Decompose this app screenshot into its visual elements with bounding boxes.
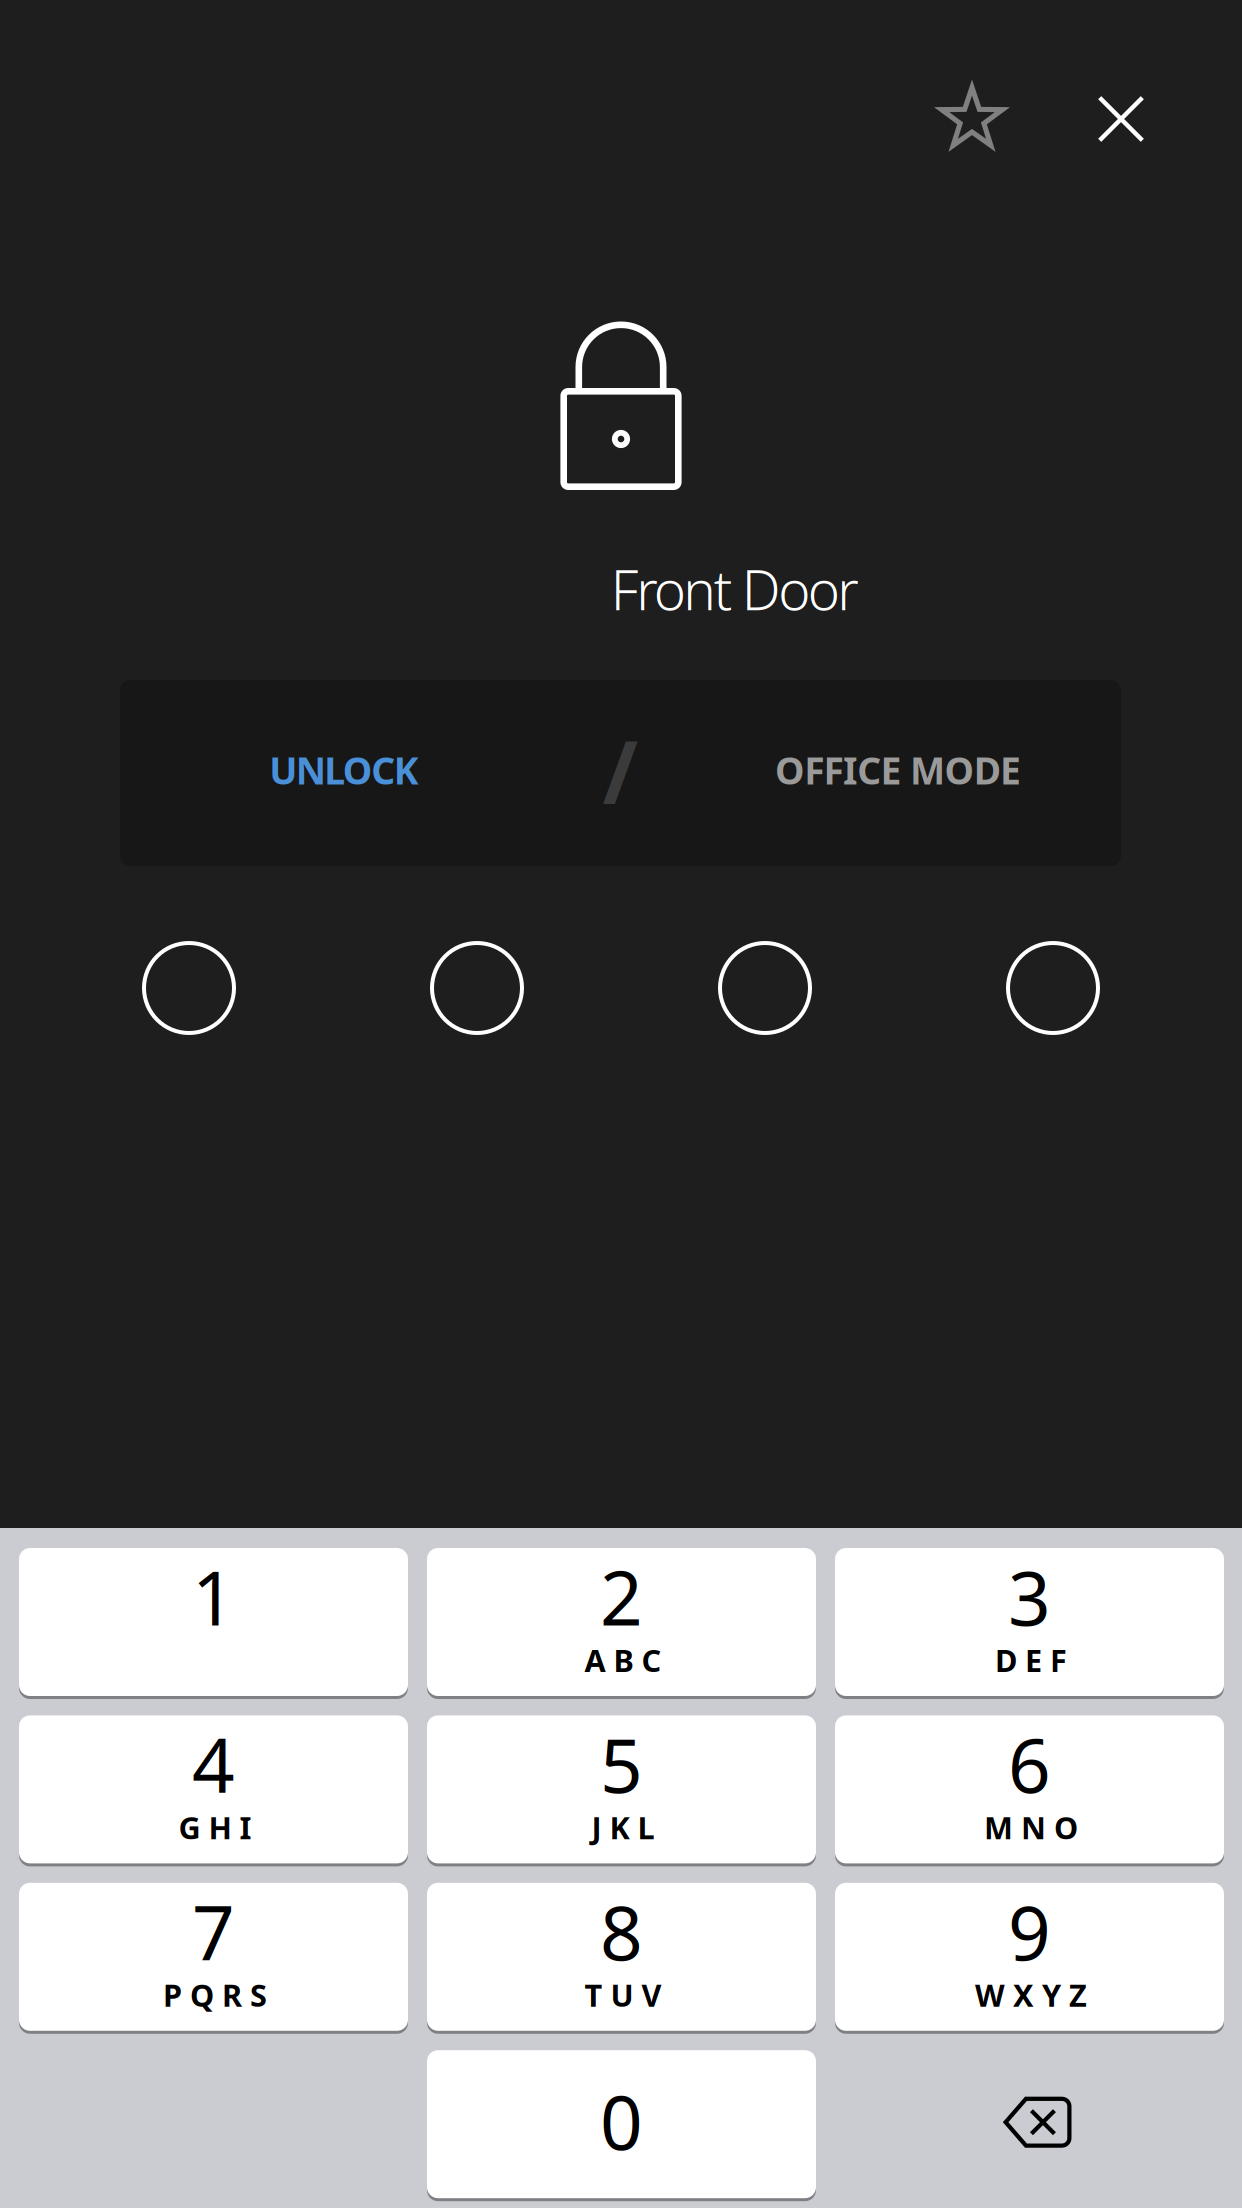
staticText: JKL <box>591 1807 654 1848</box>
staticText: UNLOCK <box>269 745 419 795</box>
staticText: OFFICE MODE <box>775 745 1021 795</box>
button[interactable]: 9 <box>835 1883 1224 2031</box>
staticText: 6 <box>1008 1714 1051 1813</box>
button[interactable]: 3 <box>835 1548 1224 1696</box>
button[interactable]: 1 <box>19 1548 408 1696</box>
staticText: 0 <box>600 2071 643 2170</box>
staticText: / <box>602 713 637 827</box>
button[interactable]: Favourite <box>920 66 1024 170</box>
staticText: 4 <box>192 1714 235 1813</box>
staticText: ABC <box>584 1640 661 1680</box>
staticText: TUV <box>584 1974 661 2015</box>
button[interactable]: UNLOCK <box>109 677 579 863</box>
button[interactable]: 4 <box>19 1715 408 1863</box>
button[interactable]: Close <box>1069 67 1173 171</box>
staticText: 8 <box>600 1882 643 1981</box>
button[interactable]: Delete <box>843 2048 1232 2196</box>
button[interactable]: 5 <box>427 1715 816 1863</box>
staticText: WXYZ <box>975 1974 1087 2015</box>
staticText: 3 <box>1008 1547 1051 1646</box>
button[interactable]: 6 <box>835 1715 1224 1863</box>
button[interactable]: 7 <box>19 1883 408 2031</box>
staticText: 2 <box>600 1547 643 1646</box>
staticText: 5 <box>600 1714 643 1813</box>
staticText: MNO <box>984 1807 1078 1848</box>
button[interactable]: OFFICE MODE <box>663 677 1133 863</box>
staticText: Front Door <box>611 553 859 625</box>
button[interactable]: 2 <box>427 1548 816 1696</box>
button[interactable]: 8 <box>427 1883 816 2031</box>
staticText: 7 <box>192 1882 235 1981</box>
button[interactable]: 0 <box>427 2050 816 2198</box>
staticText: 1 <box>192 1547 235 1646</box>
staticText: GHI <box>178 1807 251 1848</box>
staticText: DEF <box>995 1640 1067 1680</box>
staticText: PQRS <box>163 1974 267 2015</box>
staticText: 9 <box>1008 1882 1051 1981</box>
